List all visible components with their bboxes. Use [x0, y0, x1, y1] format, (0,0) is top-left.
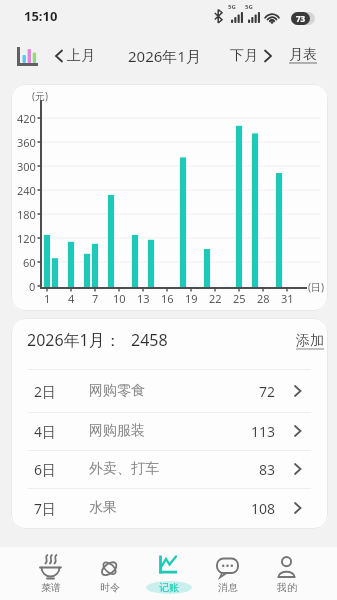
staticText: 240: [17, 183, 36, 198]
button[interactable]: 添加: [296, 332, 324, 350]
button[interactable]: 上月: [53, 46, 93, 66]
staticText: 300: [17, 159, 36, 174]
staticText: 22: [209, 291, 222, 306]
staticText: 5G: [245, 3, 253, 11]
staticText: 时令: [100, 581, 120, 594]
button[interactable]: 月表: [289, 46, 317, 64]
staticText: 180: [17, 207, 36, 222]
button[interactable]: 消息: [198, 547, 257, 600]
staticText: 16: [161, 291, 174, 306]
staticText: 31: [281, 291, 294, 306]
staticText: 72: [259, 382, 276, 401]
staticText: 我的: [277, 581, 297, 594]
button[interactable]: 我的: [257, 547, 316, 600]
staticText: 记账: [159, 581, 179, 594]
staticText: 120: [17, 231, 36, 246]
staticText: 消息: [218, 581, 238, 594]
staticText: 上月: [67, 47, 95, 65]
staticText: 5G: [228, 3, 236, 11]
staticText: 4: [68, 291, 75, 306]
staticText: 7: [92, 291, 99, 306]
staticText: (元): [32, 89, 48, 103]
staticText: 下月: [230, 47, 258, 65]
staticText: 360: [17, 135, 36, 150]
button[interactable]: 4日: [11, 412, 328, 450]
staticText: 网购服装: [89, 422, 145, 440]
staticText: 108: [251, 499, 276, 518]
staticText: 2日: [34, 382, 57, 401]
staticText: 0: [29, 279, 36, 294]
staticText: 83: [259, 460, 276, 479]
staticText: 网购零食: [89, 382, 145, 400]
staticText: 菜谱: [41, 581, 61, 594]
staticText: 13: [137, 291, 150, 306]
staticText: 4日: [34, 422, 57, 441]
button[interactable]: 2日: [11, 372, 328, 410]
staticText: 2026年1月：: [27, 329, 121, 351]
staticText: 添加: [296, 332, 324, 350]
button[interactable]: [14, 44, 40, 70]
staticText: 113: [251, 422, 276, 441]
button[interactable]: 6日: [11, 450, 328, 488]
staticText: 2026年1月: [128, 46, 201, 66]
staticText: 73: [296, 13, 306, 24]
button[interactable]: 菜谱: [21, 547, 80, 600]
staticText: 420: [17, 111, 36, 126]
staticText: (日): [308, 280, 324, 294]
staticText: 15:10: [24, 7, 58, 25]
staticText: 25: [233, 291, 246, 306]
button[interactable]: 下月: [230, 46, 270, 66]
staticText: 1: [44, 291, 51, 306]
button[interactable]: 7日: [11, 489, 328, 527]
staticText: 外卖、打车: [89, 460, 159, 478]
button[interactable]: 记账: [139, 547, 198, 600]
staticText: 水果: [89, 499, 117, 517]
button[interactable]: 时令: [80, 547, 139, 600]
staticText: 19: [185, 291, 198, 306]
staticText: 7日: [34, 499, 57, 518]
staticText: 2458: [131, 329, 168, 351]
staticText: 6日: [34, 460, 57, 479]
staticText: 10: [113, 291, 126, 306]
staticText: 60: [23, 255, 36, 270]
staticText: 28: [257, 291, 270, 306]
